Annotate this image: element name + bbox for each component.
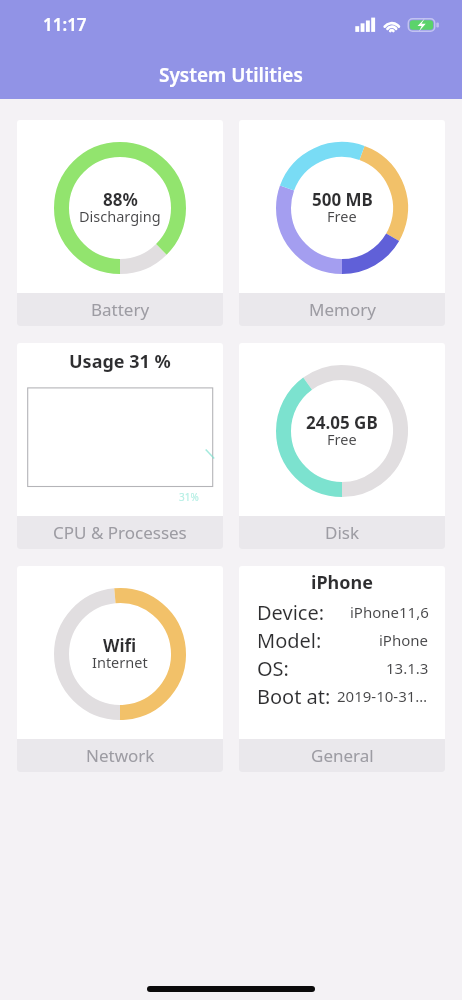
- staticText: Usage 31 %: [69, 349, 171, 374]
- staticText: Free: [327, 429, 357, 449]
- staticText: Memory: [309, 298, 376, 321]
- button[interactable]: 24.05 GB: [239, 343, 445, 549]
- staticText: Network: [86, 744, 155, 767]
- staticText: 2019-10-31 2...: [337, 686, 429, 706]
- staticText: General: [311, 744, 374, 767]
- staticText: Model:: [257, 627, 322, 654]
- staticText: CPU & Processes: [53, 521, 187, 544]
- button[interactable]: 500 MB: [239, 120, 445, 326]
- staticText: 31%: [179, 490, 199, 504]
- button[interactable]: Wifi: [17, 566, 223, 772]
- staticText: 11:17: [43, 13, 87, 36]
- button[interactable]: iPhone: [239, 566, 445, 772]
- staticText: 88%: [103, 188, 138, 211]
- staticText: Wifi: [103, 634, 137, 657]
- staticText: iPhone: [379, 630, 429, 650]
- button[interactable]: 88%: [17, 120, 223, 326]
- staticText: System Utilities: [159, 62, 303, 88]
- staticText: Disk: [325, 521, 360, 544]
- staticText: iPhone: [239, 570, 445, 595]
- staticText: 500 MB: [312, 188, 373, 211]
- staticText: iPhone11,6: [350, 602, 429, 622]
- other: Status icons: [0, 0, 462, 44]
- staticText: 13.1.3: [386, 658, 429, 678]
- staticText: Internet: [92, 652, 148, 672]
- staticText: Boot at:: [257, 683, 331, 710]
- staticText: Free: [327, 206, 357, 226]
- staticText: Device:: [257, 599, 325, 626]
- other: Home indicator: [147, 986, 315, 992]
- staticText: Battery: [91, 298, 150, 321]
- staticText: OS:: [257, 655, 289, 682]
- button[interactable]: Usage 31 %: [17, 343, 223, 549]
- staticText: Discharging: [79, 206, 161, 226]
- staticText: 24.05 GB: [306, 411, 378, 434]
